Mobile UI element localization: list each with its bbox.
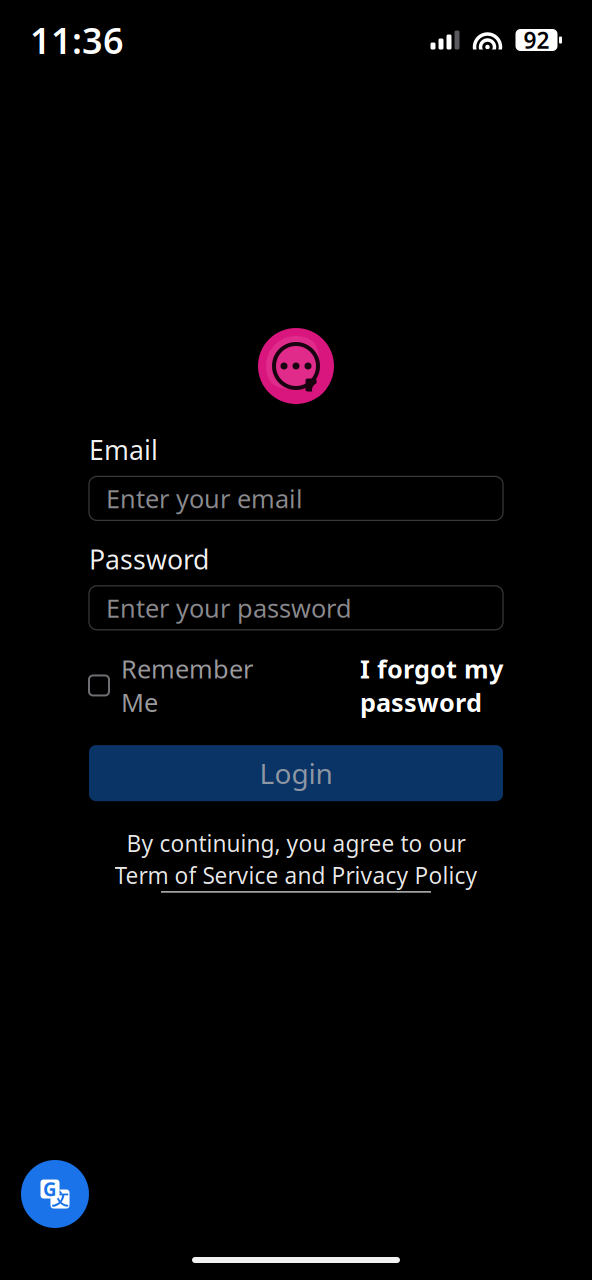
staticText: I forgot my password <box>360 652 503 719</box>
staticText: By continuing, you agree to our <box>126 828 465 858</box>
staticText: Remember Me <box>121 652 253 719</box>
staticText: Enter your password <box>106 591 352 625</box>
staticText: Term of Service and Privacy Policy <box>114 860 477 890</box>
staticText: 92 <box>523 25 549 55</box>
staticText: Enter your email <box>106 482 303 515</box>
staticText: Password <box>89 541 209 577</box>
button[interactable]: I forgot my password <box>360 652 503 719</box>
button[interactable]: Login <box>89 745 503 801</box>
button[interactable]: Translate <box>21 1160 89 1228</box>
staticText: 11:36 <box>30 16 124 64</box>
staticText: 文 <box>51 1188 68 1210</box>
staticText: G <box>43 1177 57 1201</box>
staticText: Email <box>89 432 158 467</box>
button[interactable]: Term of Service and Privacy Policy <box>114 860 477 892</box>
button[interactable]: Remember Me <box>89 652 253 719</box>
staticText: Login <box>259 754 332 792</box>
